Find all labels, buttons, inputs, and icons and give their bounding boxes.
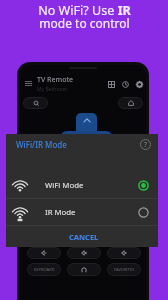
button[interactable]: Microphone (23, 97, 48, 109)
staticText: My Bedroom (37, 86, 68, 92)
button[interactable]: KEYBOARD (27, 263, 61, 276)
button[interactable]: FAVORITES (107, 263, 141, 276)
button[interactable]: Mute (67, 247, 101, 259)
button[interactable]: Menu (22, 77, 35, 90)
button[interactable]: Home (118, 97, 143, 109)
button[interactable]: Volume down (27, 247, 61, 259)
staticText: KEYBOARD (34, 267, 55, 272)
staticText: mode to control (39, 15, 130, 31)
button[interactable]: Timer (118, 77, 132, 91)
button[interactable]: Apps (104, 77, 118, 91)
button[interactable]: Up (76, 113, 97, 137)
staticText: FAVORITES (114, 267, 135, 272)
staticText: WiFi/IR Mode (16, 139, 67, 150)
button[interactable]: Headphones (67, 263, 101, 276)
staticText: IR Mode (45, 207, 76, 218)
button[interactable]: WiFi Mode (6, 172, 158, 198)
button[interactable]: Settings (132, 77, 146, 91)
button[interactable]: CANCEL (59, 229, 109, 245)
staticText: TV Remote (37, 75, 74, 85)
staticText: WiFi Mode (45, 180, 84, 191)
button[interactable]: IR Mode (6, 199, 158, 225)
staticText: ? (144, 140, 147, 149)
button[interactable]: Volume up (107, 247, 141, 259)
staticText: CANCEL (69, 232, 99, 242)
button[interactable]: Help (138, 137, 153, 152)
staticText: No WiFi? Use IR (38, 2, 131, 19)
